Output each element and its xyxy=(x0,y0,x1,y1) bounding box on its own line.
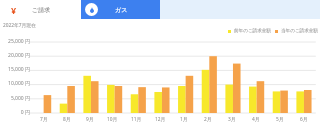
staticText: 1月 xyxy=(180,116,188,123)
staticText: 2月 xyxy=(204,116,212,123)
button[interactable]: ガス xyxy=(81,0,160,19)
staticText: 5月 xyxy=(276,116,284,123)
staticText: ご請求 xyxy=(32,6,51,14)
button[interactable]: ¥ xyxy=(0,0,81,19)
staticText: ¥ xyxy=(11,4,16,16)
staticText: 10,000 円 xyxy=(8,80,30,87)
staticText: 前年のご請求金額 xyxy=(234,28,271,34)
staticText: 11月 xyxy=(131,116,142,123)
staticText: 15,000 円 xyxy=(8,66,30,73)
staticText: 4月 xyxy=(252,116,260,123)
staticText: ガス xyxy=(115,6,128,14)
staticText: 25,000 円 xyxy=(8,38,30,45)
staticText: 6月 xyxy=(300,116,308,123)
staticText: 0 円 xyxy=(20,109,30,116)
staticText: 8月 xyxy=(63,116,71,123)
staticText: 当年のご請求金額 xyxy=(281,28,318,34)
staticText: 10月 xyxy=(107,116,118,123)
staticText: 3月 xyxy=(228,116,236,123)
staticText: 12月 xyxy=(155,116,166,123)
staticText: 2022年7月現在 xyxy=(3,22,36,29)
staticText: 20,000 円 xyxy=(8,52,30,59)
staticText: 7月 xyxy=(40,116,48,123)
staticText: 5,000 円 xyxy=(10,95,30,102)
staticText: 9月 xyxy=(86,116,94,123)
